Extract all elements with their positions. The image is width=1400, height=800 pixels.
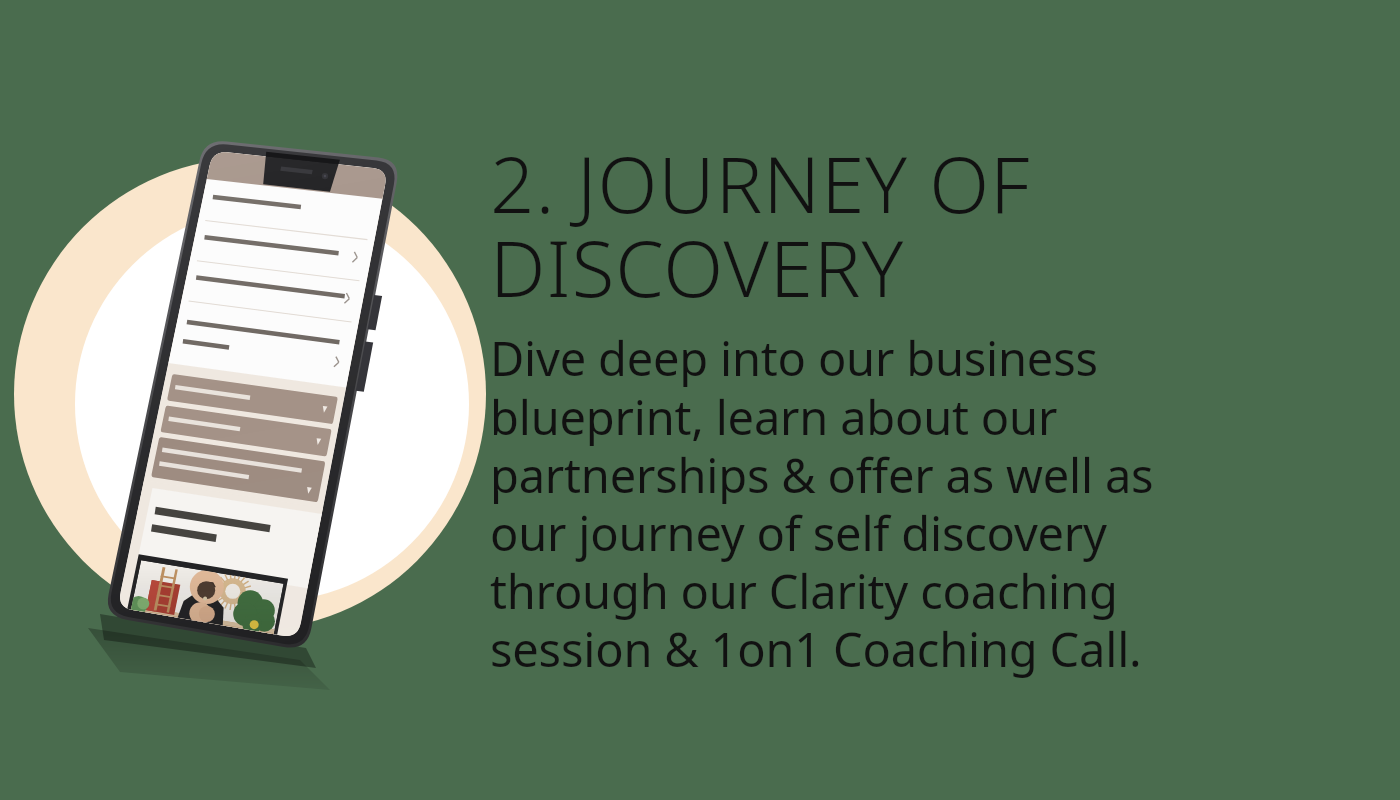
staticText: Dive deep into our business blueprint, l…	[490, 326, 1154, 680]
staticText: 2. JOURNEY OF DISCOVERY	[490, 130, 1031, 320]
button[interactable]: Course app preview on phone	[100, 135, 405, 655]
